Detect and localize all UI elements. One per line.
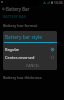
staticText: Battery Bar [6, 6, 30, 12]
staticText: Battery bar thickness [3, 75, 42, 80]
button[interactable]: CANCEL [24, 61, 42, 70]
staticText: 10:46 [54, 0, 63, 5]
button[interactable]: Center-reversed [3, 53, 57, 61]
staticText: BATTERY BAR [3, 14, 26, 19]
button[interactable]: Regular [3, 45, 57, 53]
staticText: Battery bar style [5, 34, 42, 41]
staticText: Regular [5, 47, 20, 52]
staticText: CANCEL [26, 63, 40, 68]
button[interactable]: Back [0, 5, 7, 12]
staticText: Battery bar format [3, 23, 38, 28]
button[interactable]: Battery bar thickness [0, 74, 64, 81]
staticText: Center-reversed [5, 55, 35, 60]
button[interactable]: Battery bar format [0, 22, 64, 29]
